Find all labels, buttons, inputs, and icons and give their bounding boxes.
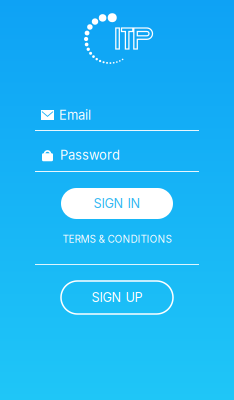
button[interactable]: SIGN IN [61,188,173,219]
staticText: SIGN IN [93,196,140,211]
button[interactable]: SIGN UP [61,281,173,314]
staticText: Password [60,147,120,163]
staticText: TERMS & CONDITIONS [62,233,171,245]
staticText: Email [59,107,91,123]
button[interactable]: TERMS & CONDITIONS [27,232,207,246]
staticText: SIGN UP [91,290,142,305]
